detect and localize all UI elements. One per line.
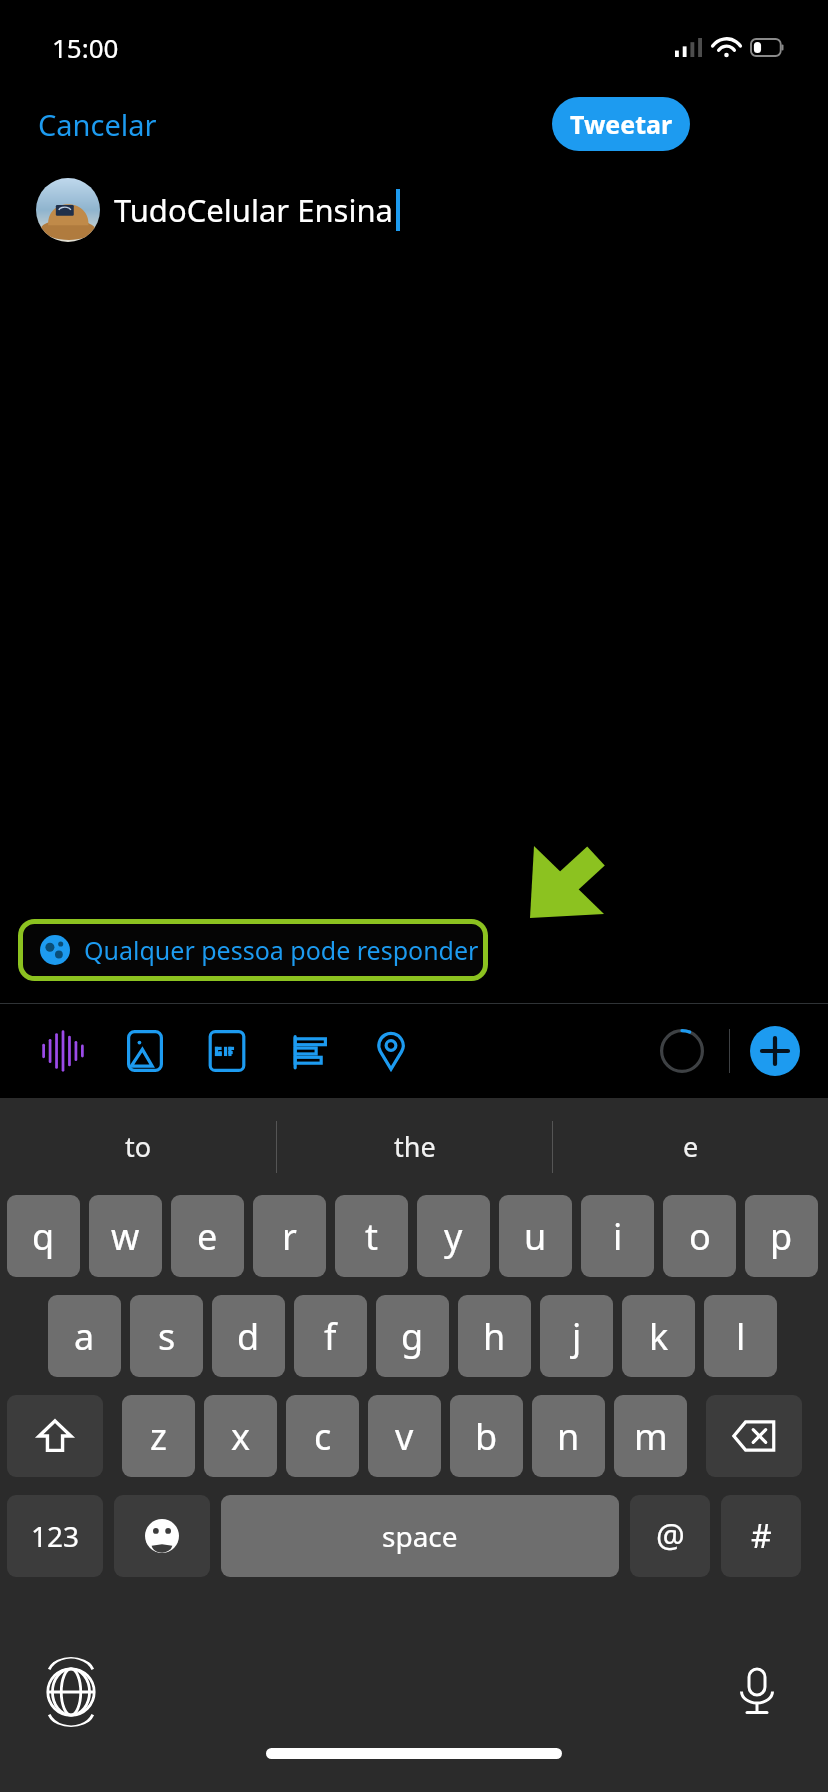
staticText: Qualquer pessoa pode responder xyxy=(84,933,479,967)
button[interactable]: j xyxy=(540,1295,613,1377)
staticText: v xyxy=(395,1412,414,1461)
staticText: f xyxy=(324,1312,337,1361)
staticText: 123 xyxy=(31,1517,80,1555)
staticText: d xyxy=(237,1312,260,1361)
staticText: i xyxy=(613,1212,623,1261)
button[interactable]: y xyxy=(417,1195,490,1277)
staticText: e xyxy=(197,1212,218,1261)
staticText: TudoCelular Ensina xyxy=(114,189,393,231)
staticText: j xyxy=(572,1312,582,1361)
staticText: # xyxy=(751,1514,772,1558)
staticText: a xyxy=(74,1312,95,1361)
button[interactable]: Cancelar xyxy=(24,97,171,152)
button[interactable]: d xyxy=(212,1295,285,1377)
button[interactable]: n xyxy=(532,1395,605,1477)
button[interactable]: Poll xyxy=(268,1010,350,1092)
button[interactable]: a xyxy=(48,1295,121,1377)
staticText: @ xyxy=(656,1514,685,1558)
staticText: Tweetar xyxy=(570,107,673,141)
button[interactable]: GIF xyxy=(186,1010,268,1092)
staticText: s xyxy=(158,1312,176,1361)
button[interactable]: v xyxy=(368,1395,441,1477)
button[interactable]: # xyxy=(721,1495,801,1577)
staticText: t xyxy=(365,1212,378,1261)
button[interactable]: to xyxy=(0,1098,276,1195)
staticText: x xyxy=(231,1412,251,1461)
staticText: the xyxy=(394,1128,436,1165)
staticText: z xyxy=(150,1412,167,1461)
staticText: m xyxy=(634,1412,668,1461)
button[interactable]: space xyxy=(221,1495,619,1577)
staticText: o xyxy=(689,1212,711,1261)
staticText: l xyxy=(736,1312,746,1361)
button[interactable]: g xyxy=(376,1295,449,1377)
button[interactable]: o xyxy=(663,1195,736,1277)
button[interactable]: q xyxy=(7,1195,80,1277)
button[interactable]: m xyxy=(614,1395,687,1477)
staticText: g xyxy=(401,1312,424,1361)
button[interactable]: Shift xyxy=(7,1395,103,1477)
button[interactable]: b xyxy=(450,1395,523,1477)
button[interactable]: f xyxy=(294,1295,367,1377)
button[interactable]: x xyxy=(204,1395,277,1477)
staticText: 15:00 xyxy=(52,30,119,65)
staticText: k xyxy=(649,1312,669,1361)
button[interactable]: Location xyxy=(350,1010,432,1092)
button[interactable]: h xyxy=(458,1295,531,1377)
button[interactable]: e xyxy=(171,1195,244,1277)
staticText: y xyxy=(444,1212,463,1261)
button[interactable]: @ xyxy=(630,1495,710,1577)
button[interactable]: s xyxy=(130,1295,203,1377)
button[interactable]: Tweetar xyxy=(552,97,690,151)
button[interactable]: w xyxy=(89,1195,162,1277)
button[interactable]: c xyxy=(286,1395,359,1477)
staticText: b xyxy=(475,1412,498,1461)
staticText: Cancelar xyxy=(38,105,157,144)
staticText: space xyxy=(382,1517,458,1555)
button[interactable]: i xyxy=(581,1195,654,1277)
staticText: p xyxy=(770,1212,793,1261)
button[interactable]: Backspace xyxy=(706,1395,802,1477)
staticText: c xyxy=(314,1412,332,1461)
staticText: r xyxy=(282,1212,297,1261)
button[interactable]: Media xyxy=(104,1010,186,1092)
button[interactable]: Qualquer pessoa pode responder xyxy=(18,919,488,981)
staticText: n xyxy=(557,1412,580,1461)
button[interactable]: Add tweet xyxy=(750,1026,800,1076)
staticText: to xyxy=(125,1128,152,1165)
button[interactable]: Change keyboard xyxy=(36,1657,106,1727)
staticText: h xyxy=(483,1312,506,1361)
button[interactable]: Voice input xyxy=(722,1657,792,1727)
staticText: e xyxy=(683,1128,699,1165)
button[interactable]: l xyxy=(704,1295,777,1377)
button[interactable]: t xyxy=(335,1195,408,1277)
button[interactable]: z xyxy=(122,1395,195,1477)
button[interactable]: k xyxy=(622,1295,695,1377)
staticText: q xyxy=(32,1212,55,1261)
button[interactable]: Audio xyxy=(22,1010,104,1092)
button[interactable]: r xyxy=(253,1195,326,1277)
staticText: w xyxy=(111,1212,140,1261)
button[interactable]: u xyxy=(499,1195,572,1277)
button[interactable]: the xyxy=(277,1098,552,1195)
button[interactable]: 123 xyxy=(7,1495,103,1577)
button[interactable]: Character count xyxy=(651,1020,713,1082)
button[interactable]: e xyxy=(553,1098,828,1195)
button[interactable]: p xyxy=(745,1195,818,1277)
button[interactable]: Emoji xyxy=(114,1495,210,1577)
staticText: u xyxy=(524,1212,547,1261)
